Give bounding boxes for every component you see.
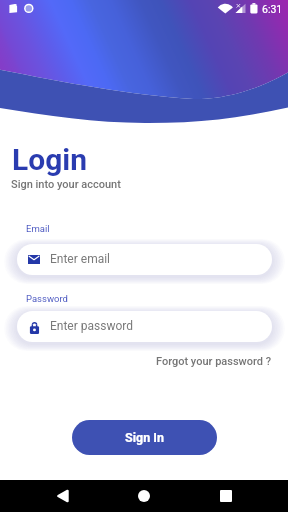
staticText: Password xyxy=(26,293,68,304)
button[interactable]: Forgot your password ? xyxy=(156,355,288,368)
staticText: Sign into your account xyxy=(11,178,121,191)
button[interactable]: Enter email xyxy=(17,244,271,275)
staticText: Enter email xyxy=(50,252,111,266)
button[interactable]: Back xyxy=(47,480,79,512)
button[interactable]: Sign In xyxy=(72,420,217,455)
staticText: 6:31 xyxy=(262,3,283,15)
staticText: Login xyxy=(12,142,88,177)
button[interactable]: Home xyxy=(128,480,160,512)
staticText: Enter password xyxy=(50,319,134,333)
staticText: Sign In xyxy=(125,430,164,445)
staticText: Email xyxy=(26,223,50,234)
button[interactable]: Enter password xyxy=(17,311,271,342)
button[interactable]: Recent apps xyxy=(210,480,242,512)
